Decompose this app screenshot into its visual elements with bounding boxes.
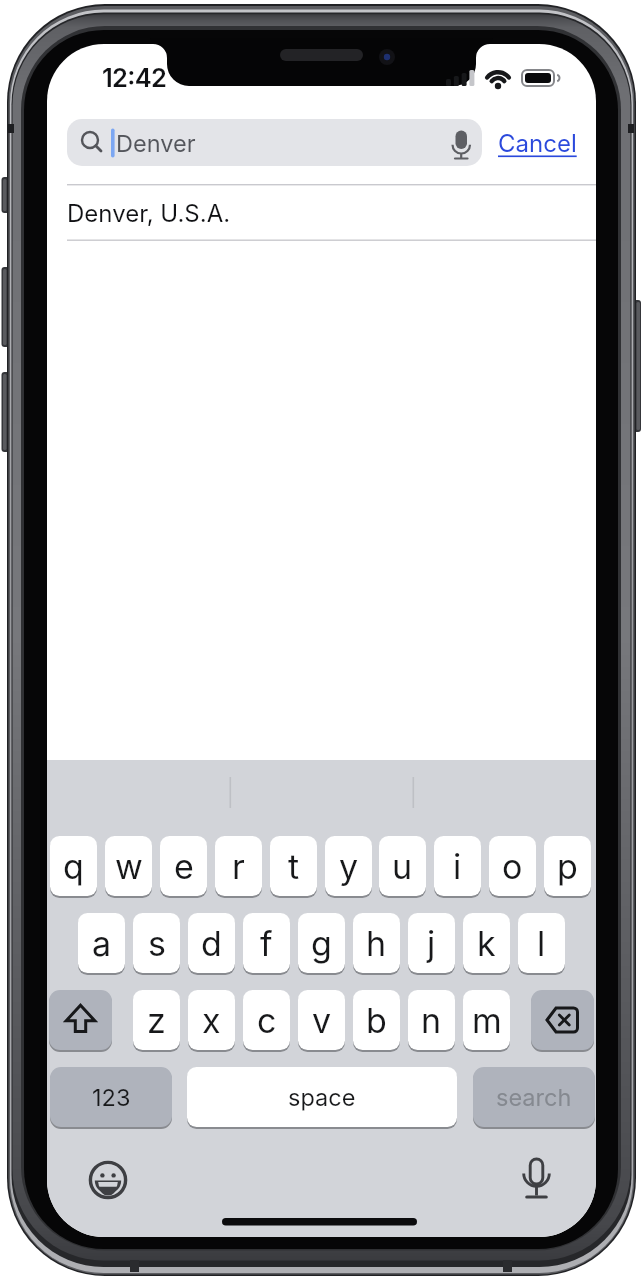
button[interactable]: j — [408, 913, 455, 973]
staticText: y — [339, 846, 359, 887]
staticText: Cancel — [498, 129, 577, 158]
staticText: w — [115, 846, 143, 887]
staticText: d — [201, 923, 222, 964]
button[interactable]: q — [50, 836, 97, 896]
button[interactable] — [49, 990, 112, 1050]
staticText: i — [453, 846, 462, 887]
staticText: p — [557, 846, 578, 887]
button[interactable]: b — [353, 990, 400, 1050]
staticText: space — [288, 1083, 356, 1111]
staticText: k — [477, 923, 496, 964]
button[interactable]: g — [298, 913, 345, 973]
button[interactable]: u — [379, 836, 426, 896]
button[interactable]: w — [105, 836, 152, 896]
staticText: c — [257, 1000, 277, 1041]
button[interactable]: a — [78, 913, 125, 973]
staticText: o — [502, 846, 523, 887]
button[interactable]: k — [463, 913, 510, 973]
button[interactable]: x — [188, 990, 235, 1050]
staticText: l — [537, 923, 546, 964]
button[interactable]: h — [353, 913, 400, 973]
staticText: t — [288, 846, 300, 887]
staticText: h — [366, 923, 387, 964]
staticText: q — [63, 846, 84, 887]
staticText: n — [421, 1000, 442, 1041]
staticText: a — [92, 923, 112, 964]
staticText: v — [312, 1000, 332, 1041]
staticText: j — [427, 923, 436, 964]
staticText: Denver, U.S.A. — [67, 199, 231, 228]
button[interactable]: Denver — [67, 119, 482, 166]
staticText: g — [311, 923, 332, 964]
staticText: f — [260, 923, 273, 964]
button[interactable]: search — [473, 1067, 595, 1127]
button[interactable]: n — [408, 990, 455, 1050]
button[interactable]: 123 — [50, 1067, 172, 1127]
button[interactable] — [531, 990, 594, 1050]
button[interactable]: f — [243, 913, 290, 973]
button[interactable]: t — [270, 836, 317, 896]
button[interactable]: d — [188, 913, 235, 973]
staticText: Denver — [116, 129, 196, 157]
button[interactable]: v — [298, 990, 345, 1050]
staticText: r — [232, 846, 245, 887]
staticText: search — [496, 1083, 572, 1111]
button[interactable]: o — [489, 836, 536, 896]
button[interactable]: e — [160, 836, 207, 896]
button[interactable]: y — [325, 836, 372, 896]
staticText: b — [366, 1000, 387, 1041]
staticText: s — [148, 923, 166, 964]
button[interactable]: m — [463, 990, 510, 1050]
staticText: x — [202, 1000, 221, 1041]
button[interactable]: r — [215, 836, 262, 896]
staticText: u — [392, 846, 413, 887]
staticText: m — [472, 1000, 502, 1041]
staticText: 12:42 — [102, 62, 167, 92]
staticText: 123 — [92, 1083, 131, 1111]
button[interactable]: p — [544, 836, 591, 896]
button[interactable] — [518, 1158, 556, 1196]
button[interactable]: i — [434, 836, 481, 896]
button[interactable]: l — [518, 913, 565, 973]
button[interactable]: z — [133, 990, 180, 1050]
staticText: e — [174, 846, 194, 887]
button[interactable]: space — [187, 1067, 457, 1127]
button[interactable] — [88, 1158, 126, 1196]
button[interactable]: c — [243, 990, 290, 1050]
button[interactable]: Denver, U.S.A. — [47, 186, 596, 240]
button[interactable]: Cancel — [490, 121, 585, 166]
staticText: z — [147, 1000, 166, 1041]
button[interactable]: s — [133, 913, 180, 973]
